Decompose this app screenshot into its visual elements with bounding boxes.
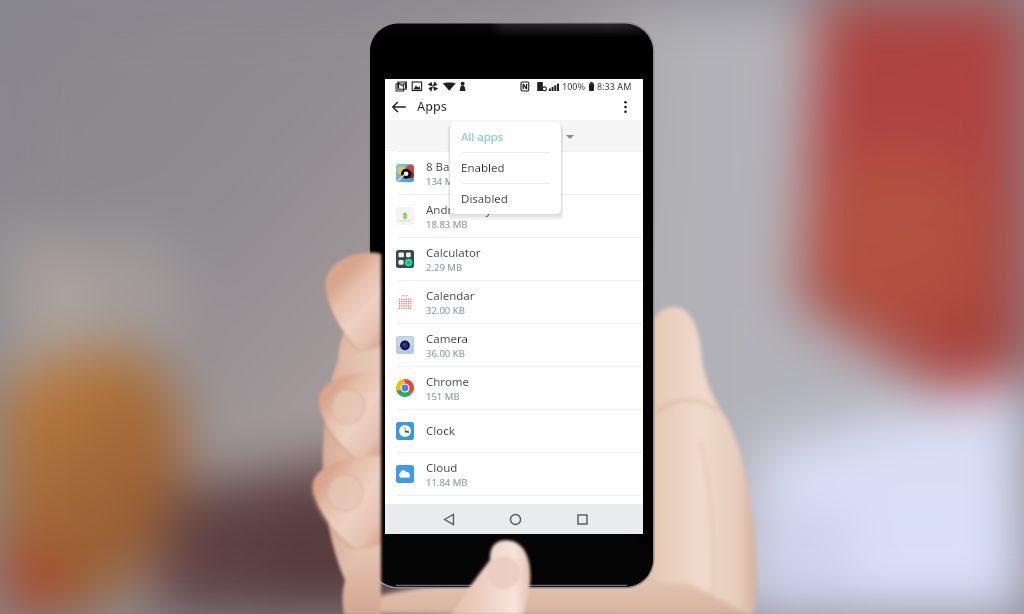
staticText: 8 Ball xyxy=(426,159,456,175)
staticText: 100% xyxy=(562,80,586,92)
staticText: Disabled xyxy=(461,191,508,207)
staticText: Apps xyxy=(417,98,447,115)
button[interactable]: Enabled xyxy=(450,153,561,183)
button[interactable]: 8 Ball xyxy=(385,152,643,194)
staticText: 151 MB xyxy=(426,390,460,403)
staticText: 8:33 AM xyxy=(597,80,632,92)
staticText: 32.00 KB xyxy=(426,304,465,317)
button[interactable]: Calculator xyxy=(385,238,643,280)
staticText: Calculator xyxy=(426,245,481,261)
staticText: 36.00 KB xyxy=(426,347,465,360)
staticText: Calendar xyxy=(426,288,475,304)
button[interactable]: Clock xyxy=(385,410,643,452)
staticText: Enabled xyxy=(461,160,505,176)
staticText: All apps xyxy=(461,129,504,145)
button[interactable]: Android Pay xyxy=(385,195,643,237)
staticText: 2.29 MB xyxy=(426,261,463,274)
button[interactable]: All apps xyxy=(450,122,561,152)
button[interactable]: Disabled xyxy=(450,184,561,214)
button[interactable]: Cloud xyxy=(385,453,643,495)
staticText: Camera xyxy=(426,331,468,347)
button[interactable]: Calendar xyxy=(385,281,643,323)
staticText: Clock xyxy=(426,423,455,439)
staticText: 134 MB xyxy=(426,175,460,188)
button[interactable]: Chrome xyxy=(385,367,643,409)
button[interactable]: Camera xyxy=(385,324,643,366)
button[interactable]: Navigate up xyxy=(385,93,412,120)
staticText: Chrome xyxy=(426,374,470,390)
button[interactable]: Recents xyxy=(567,504,597,534)
button[interactable]: More options xyxy=(612,93,639,120)
staticText: Android Pay xyxy=(426,202,492,218)
button[interactable]: Back xyxy=(434,504,464,534)
button[interactable]: Home xyxy=(500,504,530,534)
staticText: Cloud xyxy=(426,460,458,476)
staticText: 11.84 MB xyxy=(426,476,468,489)
staticText: 18.83 MB xyxy=(426,218,468,231)
